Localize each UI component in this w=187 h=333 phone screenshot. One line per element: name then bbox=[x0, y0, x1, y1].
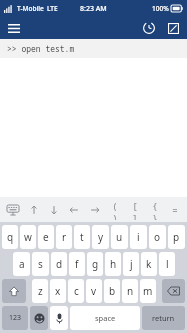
staticText: r bbox=[62, 230, 67, 244]
staticText: p bbox=[173, 230, 180, 244]
staticText: z bbox=[38, 284, 43, 298]
button[interactable]: k bbox=[141, 252, 157, 276]
button[interactable]: Right bbox=[88, 200, 102, 220]
button[interactable]: g bbox=[87, 252, 103, 276]
button[interactable]: Menu bbox=[4, 18, 24, 38]
staticText: 100% bbox=[152, 4, 169, 13]
staticText: u bbox=[116, 230, 123, 244]
button[interactable]: w bbox=[20, 225, 36, 249]
button[interactable]: Dictation bbox=[50, 306, 68, 330]
button[interactable]: v bbox=[86, 279, 102, 303]
staticText: return bbox=[152, 313, 175, 323]
staticText: 8:23 AM bbox=[80, 4, 107, 14]
button[interactable]: space bbox=[70, 306, 140, 330]
staticText: = bbox=[172, 204, 178, 216]
button[interactable]: Hide keyboard bbox=[5, 200, 21, 220]
button[interactable]: u bbox=[111, 225, 128, 249]
staticText: f bbox=[75, 257, 79, 271]
button[interactable]: b bbox=[104, 279, 120, 303]
button[interactable]: a bbox=[13, 252, 30, 276]
staticText: i bbox=[137, 230, 140, 244]
staticText: space bbox=[95, 313, 116, 323]
staticText: j bbox=[130, 257, 133, 271]
button[interactable]: z bbox=[32, 279, 48, 303]
button[interactable]: j bbox=[123, 252, 139, 276]
button[interactable]: f bbox=[69, 252, 85, 276]
button[interactable]: Up bbox=[27, 200, 41, 220]
button[interactable]: e bbox=[38, 225, 54, 249]
button[interactable]: Emoji bbox=[30, 306, 48, 330]
button[interactable]: h bbox=[105, 252, 121, 276]
button[interactable]: q bbox=[2, 225, 18, 249]
staticText: q bbox=[7, 230, 14, 244]
staticText: k bbox=[146, 257, 152, 271]
button[interactable]: Command history bbox=[139, 18, 159, 38]
staticText: b bbox=[109, 284, 116, 298]
staticText: 123 bbox=[9, 313, 22, 323]
staticText: { } bbox=[148, 200, 162, 220]
button[interactable]: r bbox=[56, 225, 72, 249]
staticText: m bbox=[143, 284, 153, 298]
button[interactable]: Figures bbox=[163, 18, 183, 38]
button[interactable]: s bbox=[32, 252, 49, 276]
button[interactable]: 123 bbox=[2, 306, 28, 330]
button[interactable]: = bbox=[168, 200, 182, 220]
staticText: LTE bbox=[47, 4, 58, 13]
staticText: [ ] bbox=[128, 200, 142, 220]
button[interactable]: i bbox=[130, 225, 147, 249]
staticText: a bbox=[19, 257, 25, 271]
staticText: e bbox=[43, 230, 49, 244]
staticText: T-Mobile bbox=[17, 4, 44, 13]
staticText: d bbox=[56, 257, 63, 271]
button[interactable]: ( ) bbox=[108, 200, 122, 220]
button[interactable]: Down bbox=[47, 200, 61, 220]
staticText: h bbox=[110, 257, 117, 271]
button[interactable]: l bbox=[159, 252, 175, 276]
button[interactable]: o bbox=[149, 225, 166, 249]
button[interactable]: Left bbox=[67, 200, 81, 220]
button[interactable]: [ ] bbox=[128, 200, 142, 220]
staticText: o bbox=[154, 230, 161, 244]
button[interactable]: n bbox=[122, 279, 138, 303]
staticText: c bbox=[74, 284, 79, 298]
button[interactable]: p bbox=[168, 225, 185, 249]
button[interactable]: c bbox=[68, 279, 84, 303]
staticText: ( ) bbox=[108, 200, 122, 220]
staticText: s bbox=[38, 257, 43, 271]
staticText: x bbox=[55, 284, 61, 298]
staticText: t bbox=[80, 230, 84, 244]
staticText: w bbox=[24, 230, 32, 244]
button[interactable]: t bbox=[74, 225, 90, 249]
staticText: g bbox=[92, 257, 99, 271]
staticText: y bbox=[98, 230, 104, 244]
button[interactable]: Backspace bbox=[162, 279, 185, 303]
button[interactable]: y bbox=[92, 225, 109, 249]
button[interactable]: x bbox=[50, 279, 66, 303]
staticText: n bbox=[127, 284, 134, 298]
button[interactable]: Shift bbox=[2, 279, 26, 303]
button[interactable]: { } bbox=[148, 200, 162, 220]
button[interactable]: return bbox=[142, 306, 185, 330]
button[interactable]: d bbox=[51, 252, 67, 276]
button[interactable]: >> open test.m bbox=[0, 39, 187, 58]
staticText: >> open test.m bbox=[7, 43, 75, 54]
staticText: v bbox=[91, 284, 97, 298]
button[interactable]: m bbox=[140, 279, 156, 303]
staticText: l bbox=[166, 257, 169, 271]
